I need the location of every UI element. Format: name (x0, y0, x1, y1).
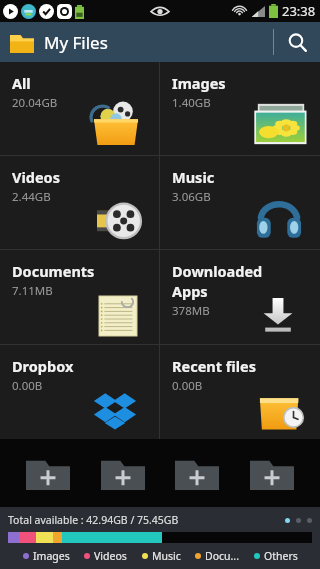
staticText: My Files (44, 31, 108, 54)
button[interactable]: Search (274, 22, 320, 62)
staticText: Total available : 42.94GB / 75.45GB (8, 513, 179, 527)
button[interactable]: Add shortcut (246, 452, 298, 494)
staticText: Others (264, 549, 298, 563)
staticText: All (12, 73, 31, 93)
staticText: Dropbox (12, 356, 74, 376)
staticText: Music (172, 167, 215, 187)
staticText: 23:38 (282, 2, 316, 20)
button[interactable]: Add shortcut (171, 452, 223, 494)
staticText: 2.44GB (12, 189, 51, 205)
staticText: 7.11MB (12, 283, 53, 299)
staticText: 20.04GB (12, 95, 58, 111)
staticText: Downloaded Apps (172, 261, 279, 301)
button[interactable]: Add shortcut (22, 452, 74, 494)
button[interactable]: Documents (0, 250, 159, 344)
staticText: Images (33, 549, 70, 563)
staticText: 378MB (172, 303, 210, 319)
staticText: 0.00B (172, 378, 203, 394)
staticText: 0.00B (12, 378, 43, 394)
staticText: Documents (12, 261, 95, 281)
staticText: Videos (94, 549, 127, 563)
button[interactable]: Videos (0, 156, 159, 249)
staticText: Docu... (205, 549, 239, 563)
staticText: Images (172, 73, 226, 93)
button[interactable]: Images (160, 62, 320, 155)
button[interactable]: Add shortcut (97, 452, 149, 494)
button[interactable]: Recent files (160, 345, 320, 439)
staticText: 3.06GB (172, 189, 211, 205)
button[interactable]: Dropbox (0, 345, 159, 439)
staticText: Music (152, 549, 181, 563)
staticText: Recent files (172, 356, 256, 376)
button[interactable]: Downloaded Apps (160, 250, 320, 344)
button[interactable]: Music (160, 156, 320, 249)
staticText: Videos (12, 167, 60, 187)
button[interactable]: All (0, 62, 159, 155)
staticText: 1.40GB (172, 95, 211, 111)
